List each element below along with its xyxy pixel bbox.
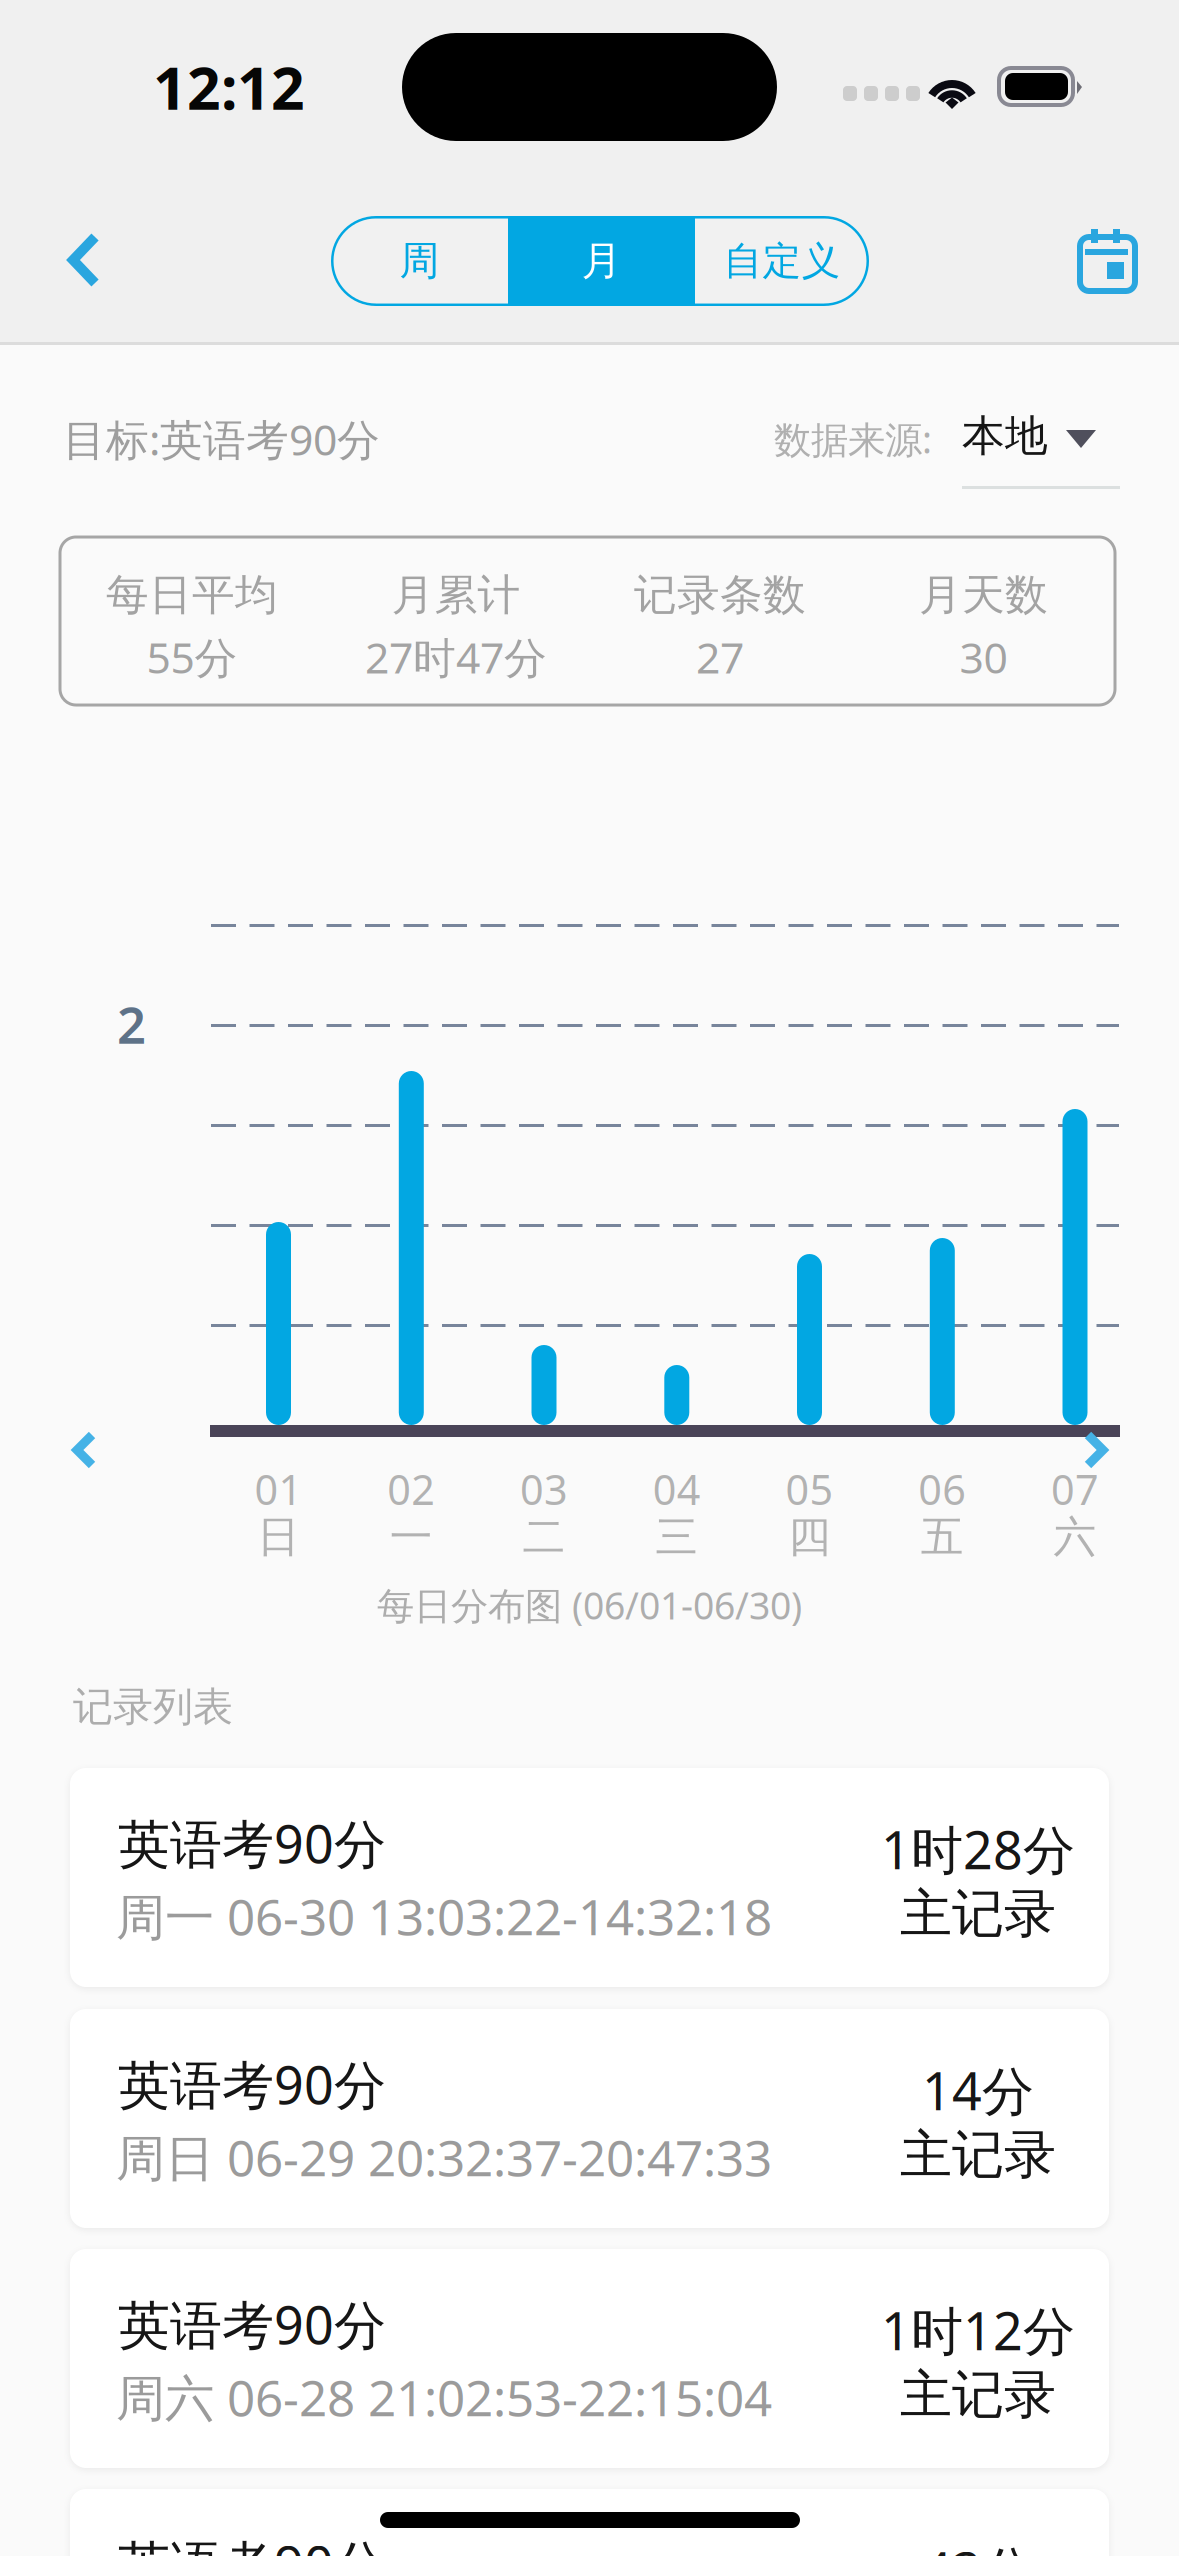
staticText: 2 <box>117 990 146 1058</box>
button[interactable]: Calendar <box>1080 229 1135 291</box>
staticText: 27 <box>696 629 744 685</box>
button[interactable]: Next period <box>1082 1430 1108 1470</box>
staticText: 55分 <box>146 629 237 685</box>
staticText: 二 <box>522 1511 565 1563</box>
button[interactable]: 本地 <box>962 410 1048 462</box>
staticText: 记录列表 <box>73 1682 233 1731</box>
staticText: 05 <box>785 1462 833 1516</box>
staticText: 周六 06-28 21:02:53-22:15:04 <box>116 2364 772 2430</box>
staticText: 30 <box>959 629 1007 685</box>
staticText: 07 <box>1051 1462 1099 1516</box>
staticText: 27时47分 <box>365 629 547 685</box>
staticText: 主记录 <box>900 1882 1056 1946</box>
staticText: 六 <box>1053 1511 1096 1563</box>
staticText: 英语考90分 <box>118 2529 386 2556</box>
staticText: 四 <box>788 1511 831 1563</box>
staticText: 月 <box>581 236 621 285</box>
staticText: 04 <box>653 1462 701 1516</box>
staticText: 目标:英语考90分 <box>63 411 380 467</box>
staticText: 数据来源: <box>774 414 932 464</box>
button[interactable]: 英语考90分 <box>70 1768 1109 1987</box>
button[interactable]: 英语考90分 <box>70 2249 1109 2468</box>
staticText: 主记录 <box>900 2123 1056 2187</box>
staticText: 06 <box>918 1462 966 1516</box>
staticText: 英语考90分 <box>118 1808 386 1878</box>
staticText: 每日平均 <box>106 569 278 621</box>
staticText: 本地 <box>962 410 1048 462</box>
staticText: 1时28分 <box>881 1814 1075 1884</box>
staticText: 14分 <box>922 2055 1034 2125</box>
staticText: 01 <box>254 1462 302 1516</box>
staticText: 1时12分 <box>881 2295 1075 2365</box>
staticText: 主记录 <box>900 2363 1056 2427</box>
staticText: 月累计 <box>391 569 520 621</box>
staticText: 12:12 <box>153 48 305 126</box>
staticText: 日 <box>257 1511 300 1563</box>
staticText: 一 <box>390 1511 433 1563</box>
staticText: 03 <box>520 1462 568 1516</box>
staticText: 02 <box>387 1462 435 1516</box>
staticText: 五 <box>921 1511 964 1563</box>
staticText: 英语考90分 <box>118 2289 386 2359</box>
staticText: 自定义 <box>723 237 840 285</box>
staticText: 42分 <box>922 2535 1034 2556</box>
staticText: 每日分布图 (06/01-06/30) <box>377 1580 802 1630</box>
button[interactable]: Back <box>67 232 100 288</box>
staticText: 周一 06-30 13:03:22-14:32:18 <box>116 1883 772 1949</box>
button[interactable]: Previous period <box>72 1430 98 1470</box>
button[interactable]: 英语考90分 <box>70 2489 1109 2556</box>
staticText: 周 <box>399 236 439 285</box>
staticText: 记录条数 <box>634 569 806 621</box>
staticText: 周日 06-29 20:32:37-20:47:33 <box>116 2124 772 2190</box>
staticText: 英语考90分 <box>118 2049 386 2119</box>
button[interactable]: 英语考90分 <box>70 2009 1109 2228</box>
staticText: 月天数 <box>919 569 1048 621</box>
staticText: 三 <box>655 1511 698 1563</box>
